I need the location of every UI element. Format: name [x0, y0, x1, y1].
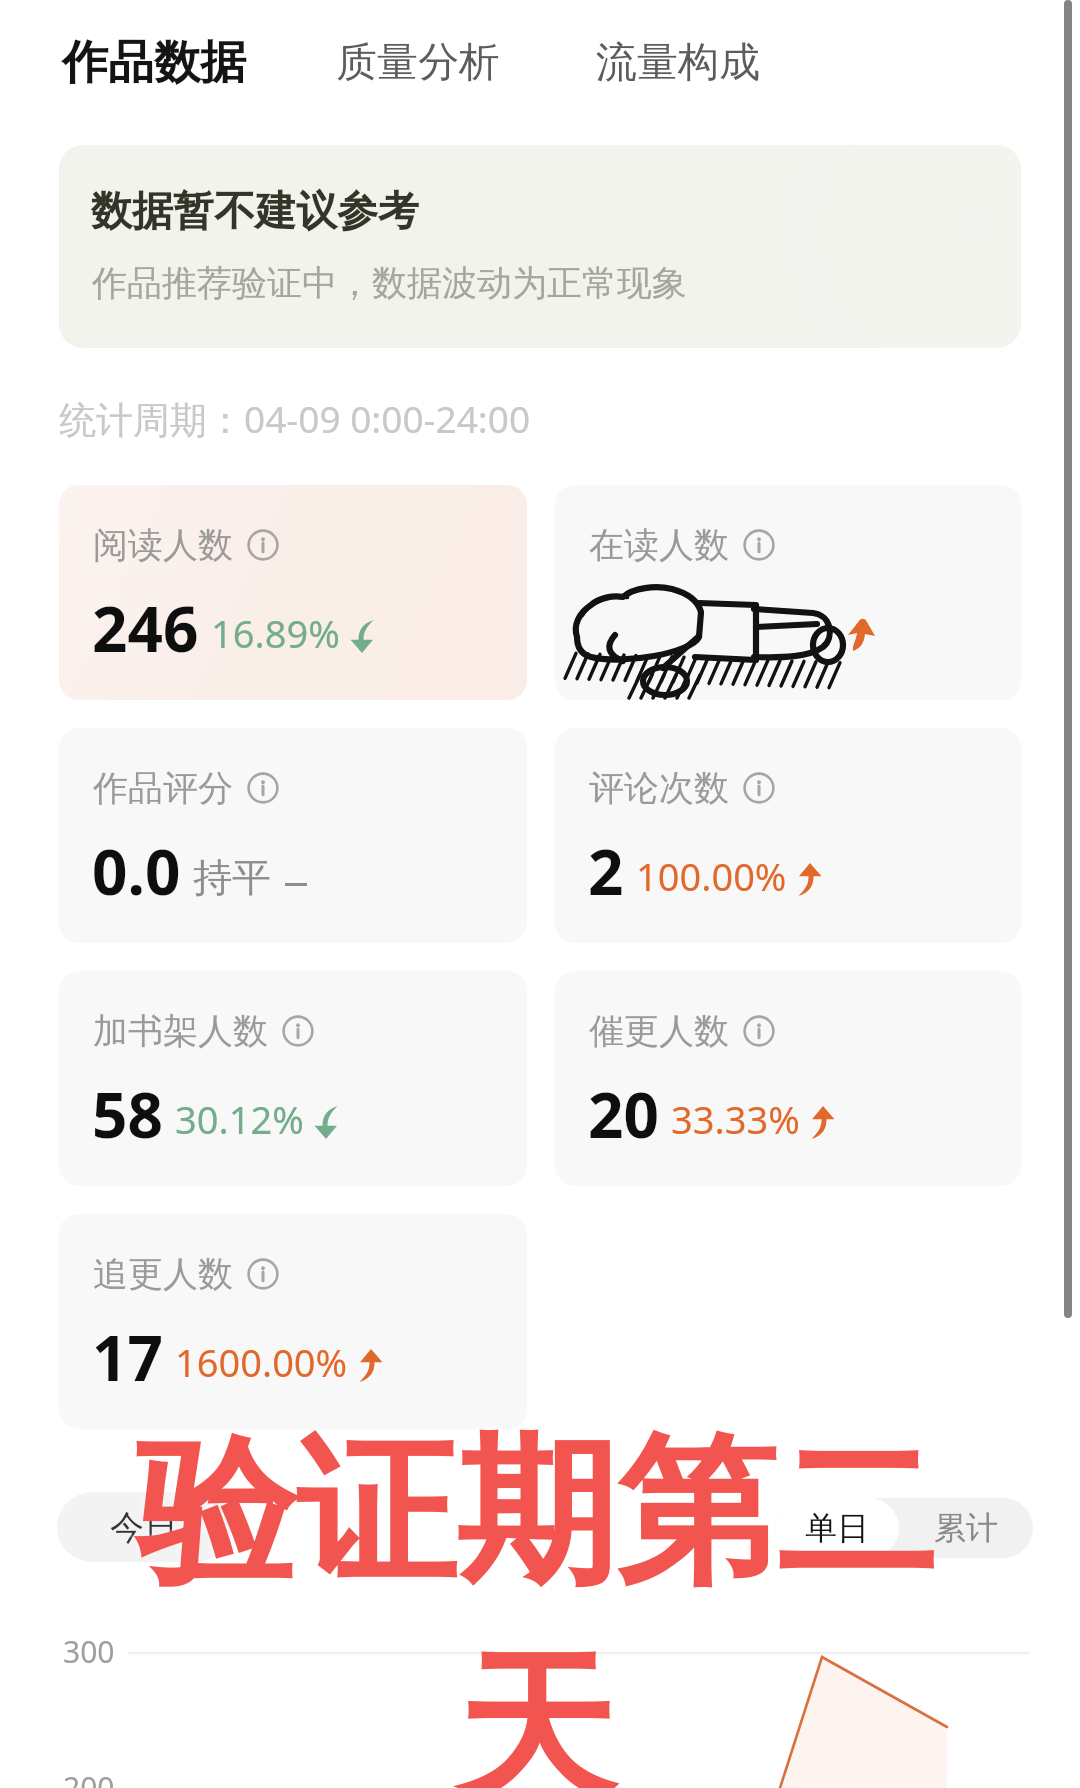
button[interactable]: 作品数据: [59, 20, 249, 106]
button[interactable]: 今日: [57, 1492, 231, 1562]
other: 说明: [282, 1015, 314, 1047]
staticText: 加书架人数: [93, 1009, 268, 1053]
staticText: 验证期第二天: [57, 1413, 1015, 1788]
staticText: 100.00%: [636, 850, 787, 902]
staticText: 17: [92, 1315, 163, 1399]
other: 说明: [247, 529, 279, 561]
staticText: 300: [63, 1631, 115, 1672]
other: 说明: [247, 1258, 279, 1290]
button[interactable]: 追更人数: [59, 1214, 527, 1429]
staticText: 统计周期：04-09 0:00-24:00: [59, 393, 531, 444]
staticText: 1600.00%: [175, 1336, 348, 1388]
staticText: 2: [588, 829, 624, 913]
other: 说明: [743, 772, 775, 804]
button[interactable]: 加书架人数: [59, 971, 527, 1186]
other: 说明: [743, 529, 775, 561]
button[interactable]: 催更人数: [555, 971, 1021, 1186]
staticText: 阅读人数: [93, 523, 233, 567]
button[interactable]: 单日: [775, 1498, 899, 1558]
staticText: 33.33%: [671, 1093, 800, 1145]
button[interactable]: 数据暂不建议参考: [59, 145, 1021, 348]
button[interactable]: 作品评分: [59, 728, 527, 943]
staticText: 累计: [934, 1508, 998, 1548]
staticText: 追更人数: [93, 1252, 233, 1296]
staticText: 16.89%: [211, 607, 340, 659]
staticText: 20: [588, 1072, 659, 1156]
button[interactable]: 质量分析: [333, 23, 503, 103]
button[interactable]: 阅读人数: [59, 485, 527, 700]
staticText: 数据暂不建议参考: [91, 186, 419, 238]
staticText: 流量构成: [596, 37, 760, 89]
staticText: 今日: [110, 1506, 178, 1549]
staticText: 催更人数: [589, 1009, 729, 1053]
other: 说明: [743, 1015, 775, 1047]
staticText: 200: [63, 1767, 115, 1788]
staticText: 作品评分: [93, 766, 233, 810]
staticText: 30.12%: [175, 1093, 304, 1145]
button[interactable]: 在读人数: [555, 485, 1021, 700]
staticText: 验证期第二天: [55, 1411, 1013, 1788]
staticText: 持平: [193, 853, 271, 902]
staticText: 质量分析: [336, 37, 500, 89]
staticText: 246: [92, 586, 199, 670]
button[interactable]: 评论次数: [555, 728, 1021, 943]
staticText: 58: [92, 1072, 163, 1156]
staticText: 0.0: [92, 829, 181, 913]
staticText: 单日: [805, 1508, 869, 1548]
staticText: 评论次数: [589, 766, 729, 810]
button[interactable]: 累计: [899, 1498, 1033, 1558]
staticText: 作品推荐验证中，数据波动为正常现象: [92, 261, 687, 305]
other: 说明: [247, 772, 279, 804]
staticText: 作品数据: [62, 34, 246, 92]
button[interactable]: 流量构成: [593, 23, 763, 103]
staticText: 在读人数: [589, 523, 729, 567]
